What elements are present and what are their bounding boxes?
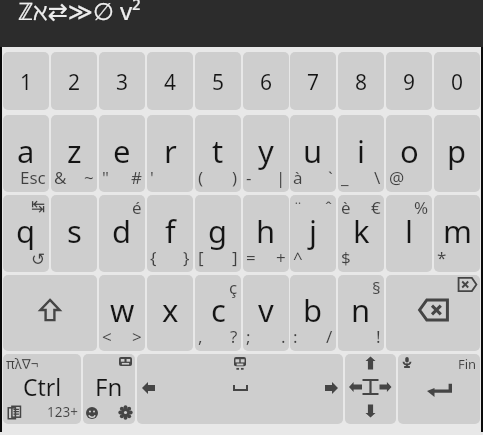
button[interactable]: 8: [338, 52, 384, 110]
staticText: l: [405, 210, 413, 252]
button[interactable]: 5: [195, 52, 241, 110]
button[interactable]: 6: [243, 52, 289, 110]
button[interactable]: 9: [386, 52, 432, 110]
staticText: ↹: [31, 196, 46, 216]
button[interactable]: 4: [147, 52, 193, 110]
staticText: @: [389, 166, 405, 189]
button[interactable]: f: [147, 195, 193, 272]
staticText: q: [16, 210, 36, 252]
button[interactable]: 0: [434, 52, 480, 110]
button[interactable]: b: [290, 275, 336, 351]
staticText: v: [258, 289, 274, 331]
staticText: b: [303, 289, 323, 331]
staticText: ,: [198, 325, 203, 348]
button[interactable]: r: [147, 115, 193, 192]
staticText: 2: [68, 68, 81, 97]
button[interactable]: k: [338, 195, 384, 272]
staticText: 6: [260, 68, 273, 97]
staticText: ↺: [31, 249, 46, 269]
button[interactable]: Shift: [3, 275, 97, 351]
staticText: #: [131, 166, 142, 189]
button[interactable]: Fn: [83, 354, 135, 424]
button[interactable]: w: [99, 275, 145, 351]
button[interactable]: 1: [3, 52, 49, 110]
button[interactable]: Arrow keys: [345, 354, 396, 424]
button[interactable]: 2: [51, 52, 97, 110]
staticText: o: [400, 130, 419, 172]
button[interactable]: s: [51, 195, 97, 272]
staticText: m: [443, 210, 472, 252]
staticText: p: [447, 130, 467, 172]
button[interactable]: Space: [137, 354, 343, 424]
staticText: Fn: [95, 370, 123, 403]
staticText: ': [150, 166, 154, 189]
button[interactable]: 7: [290, 52, 336, 110]
staticText: _: [341, 166, 349, 189]
staticText: {: [150, 246, 157, 269]
staticText: =: [246, 246, 256, 269]
button[interactable]: l: [386, 195, 432, 272]
button[interactable]: a: [3, 115, 49, 192]
staticText: k: [353, 210, 370, 252]
staticText: §: [372, 276, 381, 299]
staticText: $: [341, 246, 351, 269]
staticText: (: [198, 166, 204, 189]
staticText: i: [357, 130, 365, 172]
button[interactable]: Enter: [398, 354, 480, 424]
staticText: |: [276, 166, 286, 189]
button[interactable]: x: [147, 275, 193, 351]
staticText: ¨: [293, 196, 303, 219]
button[interactable]: v: [243, 275, 289, 351]
staticText: !: [376, 325, 381, 348]
staticText: \: [374, 166, 381, 189]
staticText: Fin: [458, 355, 477, 373]
staticText: ]: [232, 246, 238, 269]
staticText: 3: [116, 68, 129, 97]
staticText: ): [232, 166, 238, 189]
button[interactable]: i: [338, 115, 384, 192]
staticText: 123+: [47, 403, 78, 421]
button[interactable]: 3: [99, 52, 145, 110]
staticText: +: [276, 246, 286, 269]
staticText: 9: [403, 68, 416, 97]
staticText: ?: [230, 325, 238, 348]
staticText: f: [165, 210, 176, 252]
staticText: h: [256, 210, 276, 252]
staticText: Esc: [20, 166, 46, 189]
button[interactable]: Backspace: [386, 275, 480, 351]
staticText: 1: [20, 68, 33, 97]
staticText: >: [132, 325, 142, 348]
button[interactable]: t: [195, 115, 241, 192]
button[interactable]: y: [243, 115, 289, 192]
staticText: &: [54, 166, 67, 189]
staticText: j: [309, 210, 317, 252]
staticText: ;: [246, 325, 251, 348]
staticText: ˆ: [325, 196, 333, 219]
button[interactable]: g: [195, 195, 241, 272]
button[interactable]: e: [99, 115, 145, 192]
button[interactable]: o: [386, 115, 432, 192]
staticText: w: [110, 289, 135, 331]
button[interactable]: j: [290, 195, 336, 272]
button[interactable]: h: [243, 195, 289, 272]
staticText: e: [113, 130, 131, 172]
staticText: n: [351, 289, 371, 331]
staticText: 7: [307, 68, 320, 97]
button[interactable]: u: [290, 115, 336, 192]
staticText: πλ∇¬: [6, 355, 39, 373]
staticText: x: [162, 289, 179, 331]
button[interactable]: p: [434, 115, 480, 192]
button[interactable]: q: [3, 195, 49, 272]
staticText: -: [246, 166, 252, 189]
button[interactable]: n: [338, 275, 384, 351]
staticText: <: [102, 325, 112, 348]
staticText: *: [437, 246, 447, 269]
button[interactable]: Ctrl: [3, 354, 81, 424]
button[interactable]: d: [99, 195, 145, 272]
button[interactable]: c: [195, 275, 241, 351]
staticText: Ctrl: [23, 371, 62, 402]
button[interactable]: m: [434, 195, 480, 272]
staticText: `: [328, 166, 333, 189]
button[interactable]: z: [51, 115, 97, 192]
staticText: y: [258, 130, 274, 172]
